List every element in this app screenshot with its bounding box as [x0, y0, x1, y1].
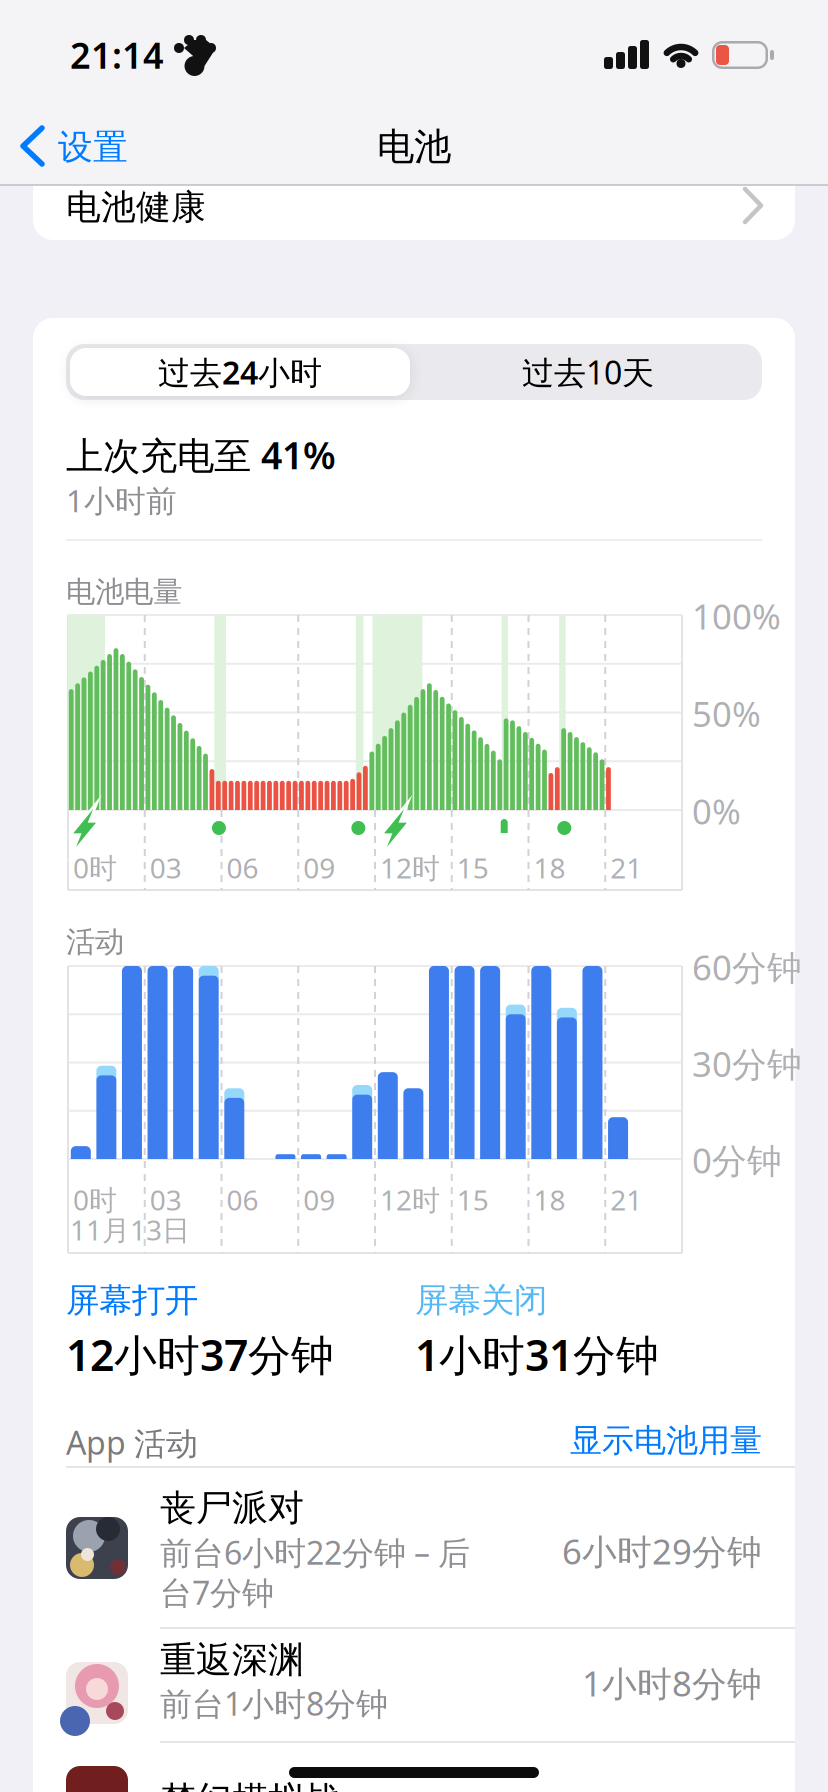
button[interactable]: 设置 [20, 124, 140, 168]
staticText: 6小时29分钟 [562, 1528, 762, 1574]
staticText: 屏幕关闭 [415, 1280, 547, 1321]
staticText: 0% [692, 788, 741, 834]
staticText: 上次充电至 41% [66, 430, 336, 480]
staticText: 12时 [380, 849, 440, 886]
staticText: 21:14 [70, 31, 164, 79]
staticText: 11月13日 [70, 1211, 190, 1248]
staticText: 06 [226, 849, 258, 886]
staticText: 15 [457, 1181, 489, 1218]
staticText: 21 [610, 849, 642, 886]
staticText: 前台6小时22分钟 – 后 [160, 1531, 470, 1573]
staticText: 电池电量 [66, 574, 182, 610]
staticText: 18 [533, 1181, 565, 1218]
staticText: 12小时37分钟 [66, 1326, 334, 1383]
button[interactable]: 过去24小时 [70, 348, 410, 396]
staticText: App 活动 [66, 1421, 198, 1464]
staticText: 18 [533, 849, 565, 886]
staticText: 03 [150, 1181, 182, 1218]
button[interactable]: 丧尸派对 [33, 1472, 795, 1628]
staticText: 过去24小时 [158, 351, 322, 393]
staticText: 30分钟 [692, 1040, 802, 1086]
staticText: 0分钟 [692, 1137, 782, 1183]
staticText: 60分钟 [692, 944, 802, 990]
staticText: 0时 [73, 849, 117, 886]
staticText: 1小时8分钟 [582, 1660, 762, 1706]
staticText: 100% [692, 593, 781, 639]
staticText: 1小时前 [66, 480, 177, 521]
staticText: 设置 [58, 126, 128, 169]
staticText: 电池 [377, 124, 451, 170]
staticText: 屏幕打开 [66, 1280, 198, 1321]
button[interactable]: 电池健康 [33, 160, 795, 240]
staticText: 活动 [66, 924, 124, 960]
staticText: 过去10天 [522, 351, 654, 393]
staticText: 12时 [380, 1181, 440, 1218]
staticText: 重返深渊 [160, 1638, 304, 1682]
staticText: 15 [457, 849, 489, 886]
staticText: 显示电池用量 [570, 1421, 762, 1460]
button[interactable]: 重返深渊 [33, 1632, 795, 1742]
button[interactable]: 过去10天 [414, 344, 762, 400]
staticText: 21 [610, 1181, 642, 1218]
staticText: 梦幻模拟战 [160, 1778, 340, 1792]
staticText: 09 [303, 1181, 335, 1218]
staticText: 丧尸派对 [160, 1486, 304, 1530]
staticText: 1小时31分钟 [415, 1326, 659, 1383]
staticText: 06 [226, 1181, 258, 1218]
button[interactable]: 显示电池用量 [432, 1421, 762, 1460]
staticText: 前台1小时8分钟 [160, 1682, 388, 1724]
staticText: 台7分钟 [160, 1571, 274, 1613]
staticText: 电池健康 [66, 186, 206, 229]
staticText: 50% [692, 690, 761, 736]
staticText: 09 [303, 849, 335, 886]
staticText: 03 [150, 849, 182, 886]
staticText: 0时 [73, 1181, 117, 1218]
